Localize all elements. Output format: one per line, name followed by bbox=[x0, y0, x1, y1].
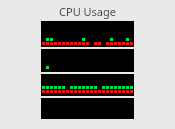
staticText: CPU Usage bbox=[0, 4, 175, 19]
